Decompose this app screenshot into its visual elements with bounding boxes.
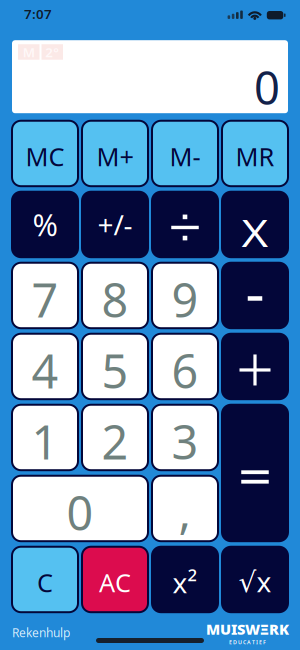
button[interactable]: +/- [82, 192, 148, 257]
button[interactable]: 0 [12, 476, 148, 541]
staticText: M+ [96, 140, 133, 173]
button[interactable]: , [152, 476, 218, 541]
staticText: C [37, 566, 53, 599]
button[interactable]: AC [82, 547, 148, 612]
button[interactable]: 3 [152, 405, 218, 470]
button[interactable]: √x [222, 547, 288, 612]
staticText: 5 [101, 339, 128, 401]
button[interactable]: 5 [82, 334, 148, 399]
staticText: 7 [31, 268, 58, 330]
button[interactable]: 2 [82, 405, 148, 470]
button[interactable]: Divide [152, 192, 218, 257]
button[interactable]: 7 [12, 263, 78, 328]
staticText: M- [169, 140, 200, 173]
staticText: M [23, 43, 35, 61]
staticText: √x [238, 563, 271, 600]
staticText: 4 [31, 339, 58, 401]
staticText: 2° [45, 43, 59, 61]
staticText: 0 [66, 481, 93, 543]
staticText: E D U C A T I E F [229, 639, 266, 646]
button[interactable]: x² [152, 547, 218, 612]
staticText: MR [235, 140, 274, 173]
button[interactable]: Minus [222, 263, 288, 328]
button[interactable]: M+ [82, 121, 148, 186]
button[interactable]: 9 [152, 263, 218, 328]
staticText: 6 [171, 339, 198, 401]
staticText: 2 [101, 410, 128, 472]
staticText: AC [99, 566, 131, 599]
staticText: 9 [171, 268, 198, 330]
button[interactable]: 6 [152, 334, 218, 399]
staticText: % [32, 204, 57, 245]
button[interactable]: 8 [82, 263, 148, 328]
staticText: x² [172, 564, 197, 601]
button[interactable]: MC [12, 121, 78, 186]
staticText: 0 [254, 57, 280, 117]
button[interactable]: MR [222, 121, 288, 186]
button[interactable]: X [222, 192, 288, 257]
button[interactable]: C [12, 547, 78, 612]
staticText: MUISWΞRK [206, 619, 289, 639]
button[interactable]: 4 [12, 334, 78, 399]
staticText: Rekenhulp [12, 624, 70, 640]
button[interactable]: Equals [222, 405, 288, 541]
button[interactable]: Plus [222, 334, 288, 399]
staticText: 1 [31, 410, 58, 472]
staticText: 3 [171, 410, 198, 472]
staticText: 8 [101, 268, 128, 330]
staticText: MC [25, 140, 64, 173]
button[interactable]: 1 [12, 405, 78, 470]
staticText: X [244, 208, 266, 257]
button[interactable]: M- [152, 121, 218, 186]
staticText: , [178, 480, 191, 542]
staticText: +/- [97, 206, 132, 243]
button[interactable]: % [12, 192, 78, 257]
staticText: 7:07 [24, 5, 52, 23]
